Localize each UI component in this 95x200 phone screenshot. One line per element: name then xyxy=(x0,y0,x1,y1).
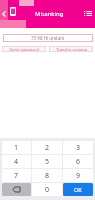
staticText: 2 xyxy=(45,143,50,153)
staticText: 8 xyxy=(45,171,50,181)
button[interactable]: 3 xyxy=(63,141,93,154)
staticText: 73 98 Hi undani xyxy=(31,35,65,41)
staticText: Mbanking xyxy=(35,10,64,18)
button[interactable]: Menu xyxy=(81,9,94,18)
staticText: 6 xyxy=(76,157,81,167)
button[interactable]: OK xyxy=(63,183,93,196)
staticText: 0 xyxy=(45,185,50,195)
button[interactable]: 9 xyxy=(63,169,93,182)
button[interactable]: Back xyxy=(0,8,8,20)
button[interactable]: Backspace xyxy=(2,183,31,196)
button[interactable]: 7 xyxy=(2,169,31,182)
button[interactable]: 73 98 Hi undani xyxy=(3,34,93,42)
button[interactable]: 2 xyxy=(32,141,62,154)
button[interactable]: Ganti password xyxy=(2,46,46,52)
staticText: 3 xyxy=(76,143,81,153)
button[interactable]: 6 xyxy=(63,155,93,168)
staticText: 4 xyxy=(14,157,19,167)
button[interactable]: 5 xyxy=(32,155,62,168)
staticText: Ganti password xyxy=(9,47,39,52)
staticText: OK xyxy=(74,186,82,193)
button[interactable]: 1 xyxy=(2,141,31,154)
staticText: 5 xyxy=(45,157,50,167)
staticText: Transfer sesama xyxy=(56,47,87,52)
button[interactable]: 0 xyxy=(32,183,62,196)
staticText: 7 xyxy=(14,171,19,181)
button[interactable]: 8 xyxy=(32,169,62,182)
staticText: 9 xyxy=(76,171,81,181)
button[interactable]: 4 xyxy=(2,155,31,168)
button[interactable]: Transfer sesama xyxy=(49,46,93,52)
staticText: 1 xyxy=(14,143,19,153)
